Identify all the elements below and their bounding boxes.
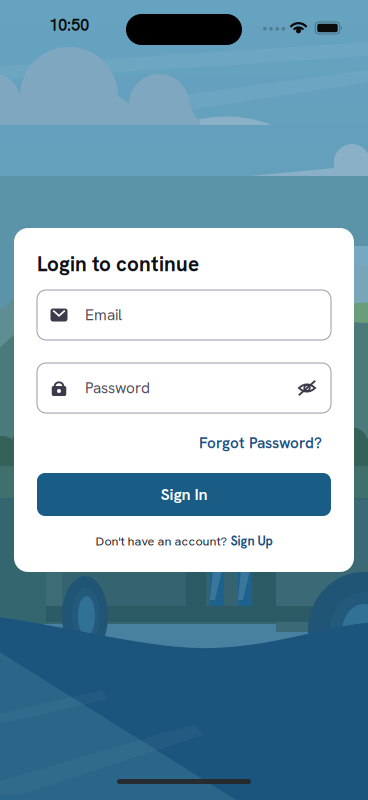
staticText: Sign In (160, 484, 207, 505)
staticText: 10:50 (49, 14, 89, 36)
button[interactable]: Email (37, 290, 331, 340)
button[interactable]: Forgot Password? (37, 434, 322, 452)
button[interactable]: Sign In (37, 473, 331, 516)
button[interactable]: Sign Up (230, 533, 272, 549)
staticText: Login to continue (37, 250, 199, 277)
staticText: Email (85, 305, 122, 325)
staticText: Password (85, 378, 150, 398)
staticText: Don't have an account? (95, 533, 230, 549)
button[interactable]: Password (37, 363, 331, 413)
staticText: Forgot Password? (199, 433, 322, 453)
staticText: Sign Up (230, 533, 272, 549)
